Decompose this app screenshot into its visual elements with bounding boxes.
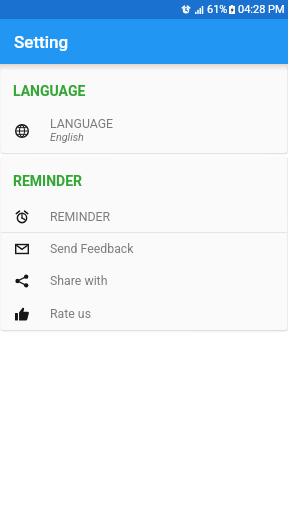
staticText: LANGUAGE [50,117,114,131]
staticText: 04:28 PM [238,3,285,16]
staticText: 61% [207,3,228,16]
button[interactable]: Send Feedback [1,233,287,265]
staticText: REMINDER [50,210,111,224]
button[interactable]: Rate us [1,297,287,330]
staticText: Send Feedback [50,242,134,256]
button[interactable]: Share with [1,265,287,297]
button[interactable]: LANGUAGE [1,113,287,153]
staticText: REMINDER [13,173,83,189]
staticText: Share with [50,274,108,288]
staticText: Rate us [50,307,91,321]
button[interactable]: REMINDER [1,201,287,232]
staticText: Setting [14,32,69,52]
staticText: English [50,131,84,144]
staticText: LANGUAGE [13,83,86,99]
